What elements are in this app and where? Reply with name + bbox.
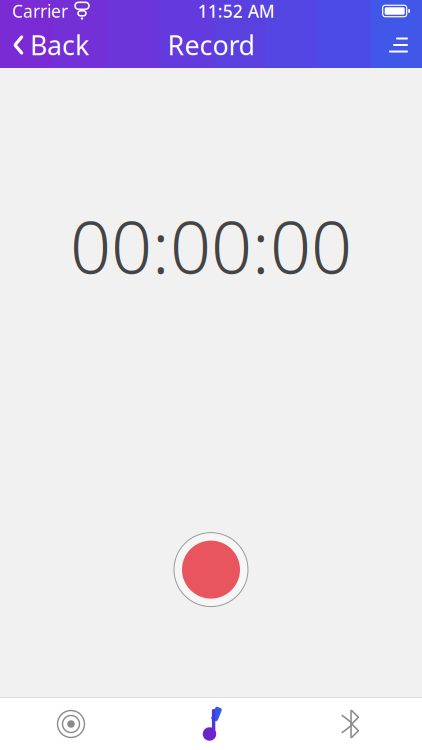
button[interactable]: Bluetooth [281,698,421,750]
button[interactable]: Menu [375,22,422,68]
staticText: Record [167,27,254,63]
staticText: 00:00:00 [70,198,352,294]
button[interactable]: Record [1,698,141,750]
staticText: Back [30,27,89,63]
staticText: Carrier [12,0,68,22]
staticText: 11:52 AM [198,0,275,22]
button[interactable]: Library [141,698,281,750]
button[interactable]: Back [0,22,99,68]
button[interactable]: Record [168,527,254,613]
